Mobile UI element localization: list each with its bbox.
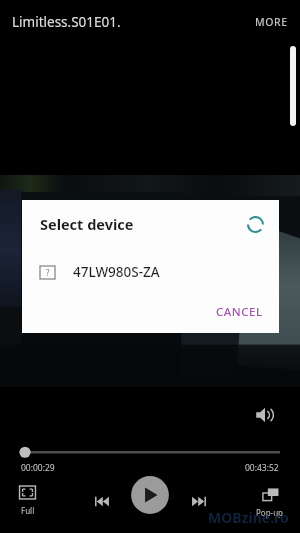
button[interactable]: CANCEL <box>206 297 273 327</box>
staticText: Select device <box>40 214 134 234</box>
button[interactable]: Previous <box>87 486 117 516</box>
button[interactable]: Volume <box>252 402 278 428</box>
button[interactable]: Next <box>183 486 213 516</box>
staticText: Limitless.S01E01.Pilot.WEBRip.Xvi… <box>12 13 121 31</box>
button[interactable]: ? <box>22 255 279 289</box>
button[interactable]: Seek bar <box>0 443 300 465</box>
button[interactable]: Play <box>129 474 171 516</box>
staticText: 47LW980S-ZA <box>73 263 160 281</box>
staticText: CANCEL <box>216 304 263 320</box>
staticText: MORE <box>255 15 288 29</box>
staticText: ? <box>46 267 50 278</box>
staticText: Pop-up <box>256 507 284 518</box>
staticText: 00:43:52 <box>245 462 279 474</box>
button[interactable]: MORE <box>243 5 300 39</box>
staticText: Full <box>21 505 35 516</box>
staticText: MOBzine.ro <box>208 508 289 527</box>
button[interactable]: Pop-up <box>252 481 288 522</box>
staticText: 00:00:29 <box>21 462 55 474</box>
button[interactable]: Full <box>14 479 41 520</box>
